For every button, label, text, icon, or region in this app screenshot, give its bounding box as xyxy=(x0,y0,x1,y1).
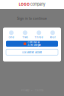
staticText: Use another account xyxy=(22,51,42,54)
staticText: LOGO xyxy=(19,2,30,7)
button[interactable]: One xyxy=(4,30,18,39)
button[interactable]: Three xyxy=(32,30,46,39)
button[interactable]: Continue as Alex Morgan xyxy=(6,41,58,47)
staticText: One xyxy=(8,36,14,39)
staticText: Three xyxy=(34,36,43,39)
button[interactable]: Two xyxy=(18,30,32,39)
button[interactable]: Four xyxy=(46,30,60,39)
staticText: Sign in to continue xyxy=(17,17,47,20)
staticText: Continue as Alex Morgan xyxy=(27,41,40,47)
staticText: Privacy • Terms xyxy=(21,89,43,92)
staticText: Four xyxy=(50,36,56,39)
staticText: Two xyxy=(22,36,28,39)
staticText: company xyxy=(30,2,45,7)
button[interactable]: Use another account xyxy=(6,49,58,55)
